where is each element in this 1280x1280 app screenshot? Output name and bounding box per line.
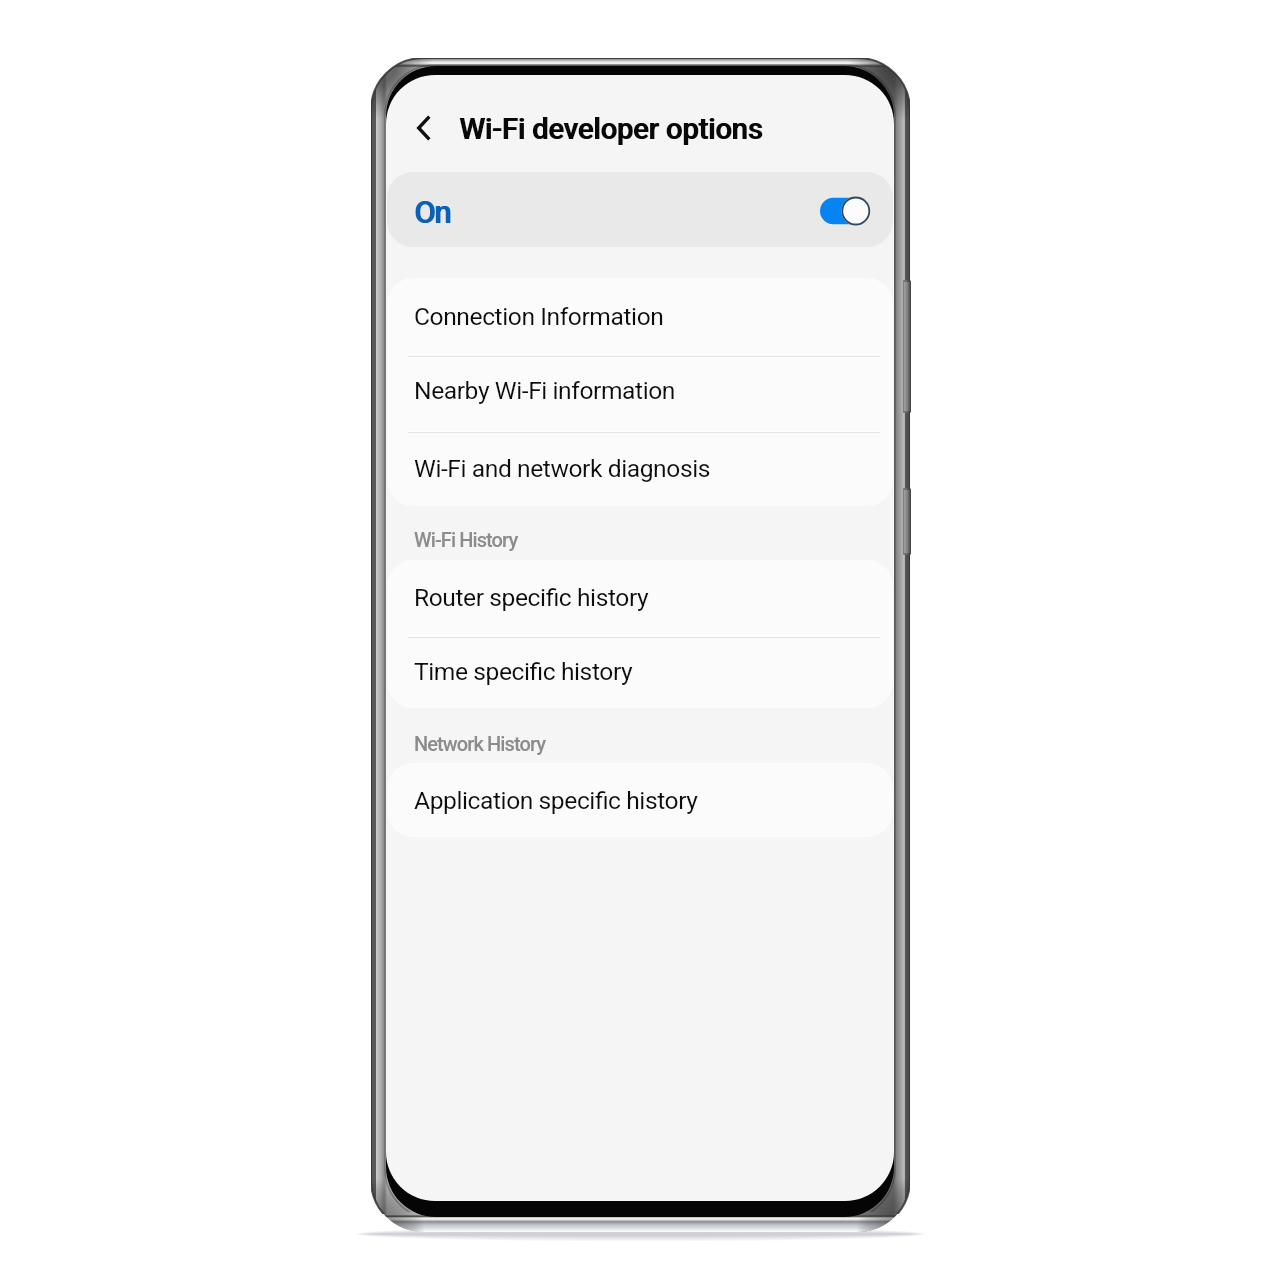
button[interactable]: On (387, 172, 893, 247)
staticText: Router specific history (414, 583, 649, 612)
staticText: Wi-Fi developer options (460, 112, 764, 146)
staticText: Nearby Wi-Fi information (414, 376, 675, 405)
staticText: Wi-Fi History (414, 528, 518, 551)
staticText: Connection Information (414, 302, 664, 331)
staticText: Application specific history (414, 786, 698, 815)
staticText: Time specific history (414, 657, 633, 686)
button[interactable]: Back (400, 104, 448, 152)
staticText: On (414, 194, 450, 230)
button[interactable]: Router specific history (387, 560, 893, 637)
staticText: Wi-Fi developer options (459, 112, 763, 146)
staticText: Network History (414, 732, 546, 755)
button[interactable]: Application specific history (387, 763, 893, 837)
button[interactable]: Wi-Fi and network diagnosis (387, 432, 893, 506)
staticText: On (415, 194, 451, 230)
staticText: Wi-Fi and network diagnosis (414, 454, 710, 483)
button[interactable]: Connection Information (387, 278, 893, 356)
button[interactable]: Nearby Wi-Fi information (387, 356, 893, 433)
button[interactable]: Time specific history (387, 637, 893, 708)
